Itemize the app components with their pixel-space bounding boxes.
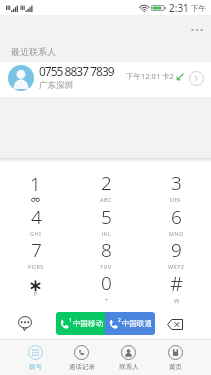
button[interactable]: 8 <box>71 237 141 270</box>
staticText: W <box>174 297 180 303</box>
staticText: 联系人 <box>119 363 139 371</box>
button[interactable]: 3 <box>141 170 211 204</box>
button[interactable]: 联系人 <box>105 345 152 375</box>
button[interactable]: 2 <box>71 170 141 204</box>
staticText: JKL <box>102 230 111 236</box>
staticText: 1 <box>69 317 72 324</box>
staticText: 8 <box>101 237 112 263</box>
button[interactable]: 拨号 <box>12 345 58 375</box>
staticText: 1 <box>30 171 41 197</box>
staticText: 拨号 <box>29 363 42 371</box>
staticText: 下午 <box>191 4 206 13</box>
button[interactable]: 2 <box>105 312 155 335</box>
staticText: P <box>34 290 38 297</box>
staticText: 2 <box>118 317 121 324</box>
staticText: DEF <box>170 196 182 203</box>
staticText: 3 <box>171 170 182 196</box>
staticText: 中国移动 <box>73 319 103 328</box>
staticText: + <box>105 296 109 302</box>
button[interactable]: 6 <box>141 204 211 237</box>
button[interactable]: P <box>0 270 71 303</box>
staticText: 2 <box>101 170 112 196</box>
button[interactable]: Backspace <box>155 310 183 339</box>
button[interactable]: Contact details <box>188 70 204 86</box>
staticText: 0755 8837 7839 <box>39 63 114 79</box>
staticText: 下午12:01 卡2 <box>126 71 174 81</box>
staticText: 0 <box>101 270 112 296</box>
button[interactable]: 1 <box>0 170 71 204</box>
button[interactable]: # <box>141 270 211 303</box>
button[interactable]: 4 <box>0 204 71 237</box>
staticText: 6 <box>171 204 182 230</box>
staticText: MNO <box>169 230 184 236</box>
staticText: 5 <box>101 204 112 230</box>
staticText: WXYZ <box>168 263 185 269</box>
button[interactable]: 0755 8837 7839 <box>0 62 211 97</box>
staticText: 4 <box>31 204 42 230</box>
staticText: 广东深圳 <box>39 80 73 91</box>
button[interactable]: 9 <box>141 237 211 270</box>
staticText: TUV <box>100 263 112 269</box>
button[interactable]: 黄页 <box>152 345 199 375</box>
button[interactable]: 7 <box>0 237 71 270</box>
staticText: 通话记录 <box>69 363 95 371</box>
button[interactable]: 5 <box>71 204 141 237</box>
staticText: ABC <box>100 196 112 203</box>
staticText: 2:31 <box>169 1 189 15</box>
button[interactable]: 1 <box>56 312 105 335</box>
button[interactable]: 通话记录 <box>58 345 105 375</box>
staticText: 9 <box>171 237 182 263</box>
staticText: 中国联通 <box>122 319 152 328</box>
staticText: 黄页 <box>169 363 182 371</box>
button[interactable]: 0 <box>71 270 141 303</box>
staticText: 7 <box>31 237 42 263</box>
staticText: # <box>170 270 183 297</box>
staticText: 最近联系人 <box>11 46 56 57</box>
staticText: PQRS <box>28 263 44 269</box>
staticText: GHI <box>30 230 42 236</box>
button[interactable]: More options <box>185 22 209 38</box>
button[interactable]: More <box>18 308 56 339</box>
